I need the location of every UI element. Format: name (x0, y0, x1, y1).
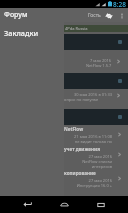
staticText: 27 мая 2016 (64, 178, 112, 183)
button[interactable]: Home (56, 196, 73, 213)
staticText: 7 мая 2016 (90, 58, 112, 63)
staticText: 27 мая 2016 (64, 154, 112, 159)
staticText: 21 мая 2016 в 11:08 (64, 134, 112, 139)
button[interactable]: Back (19, 196, 36, 213)
staticText: Инструкция 16.0 + NetFlow (64, 183, 112, 188)
staticText: 30 мая 2016 в 01:33 (74, 92, 112, 97)
staticText: Гость (88, 12, 101, 19)
staticText: 4Pda Russia (65, 26, 88, 31)
button[interactable]: Закладки (0, 26, 64, 40)
staticText: NetFlow 1.5.7 (86, 63, 112, 68)
button[interactable]: NetFlow (64, 126, 128, 146)
staticText: учет движения (64, 146, 100, 152)
button[interactable]: Advertisement (64, 34, 128, 50)
staticText: не видит только по ссылке (64, 139, 112, 144)
staticText: 8:28 (113, 0, 126, 8)
button[interactable]: Refresh (102, 9, 115, 22)
staticText: Закладки (4, 28, 39, 38)
button[interactable]: Advertisement (64, 73, 128, 89)
staticText: интересов (64, 164, 112, 169)
staticText: опрос по покупке мишеней (64, 97, 112, 102)
staticText: NetFlow списки визуализации (64, 159, 112, 164)
staticText: Форум (4, 10, 28, 20)
button[interactable]: учет движения (64, 146, 128, 170)
staticText: NetFlow (64, 126, 84, 132)
staticText: копирование движения (64, 170, 112, 176)
button[interactable]: Advertisement (64, 109, 128, 125)
button[interactable]: копирование движения (64, 170, 128, 190)
button[interactable]: Recent apps (92, 196, 109, 213)
button[interactable]: More options (115, 9, 128, 22)
